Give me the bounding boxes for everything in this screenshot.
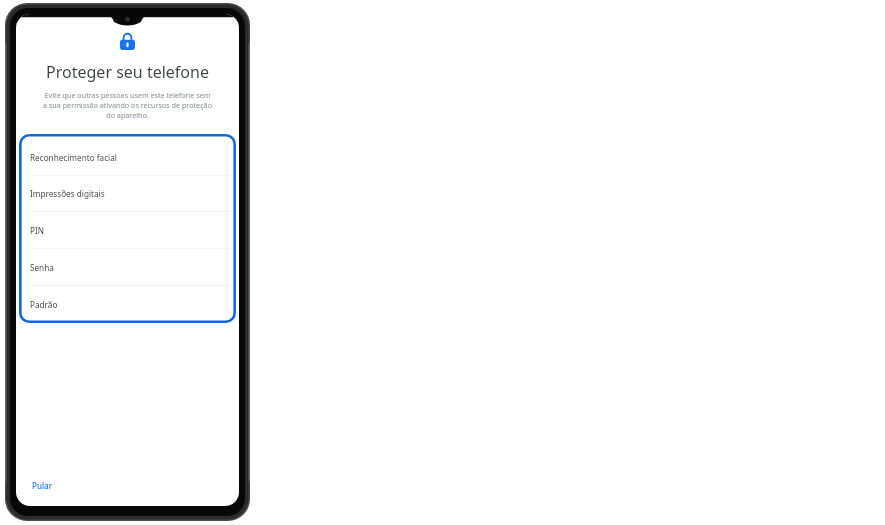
other: Lock <box>120 33 135 50</box>
button[interactable]: Impressões digitais <box>19 176 236 212</box>
button[interactable]: Reconhecimento facial <box>19 140 236 176</box>
staticText: Padrão <box>30 299 58 310</box>
button[interactable]: Senha <box>19 249 236 286</box>
staticText: PIN <box>30 225 44 236</box>
staticText: Pular <box>32 480 53 491</box>
button[interactable]: Pular <box>29 478 56 493</box>
button[interactable]: PIN <box>19 212 236 249</box>
staticText: Senha <box>30 262 54 273</box>
staticText: Evite que outras pessoas usem este telef… <box>42 90 213 120</box>
staticText: Proteger seu telefone <box>16 61 239 83</box>
staticText: Reconhecimento facial <box>30 152 117 163</box>
button[interactable]: Padrão <box>19 286 236 323</box>
staticText: Impressões digitais <box>30 188 105 199</box>
